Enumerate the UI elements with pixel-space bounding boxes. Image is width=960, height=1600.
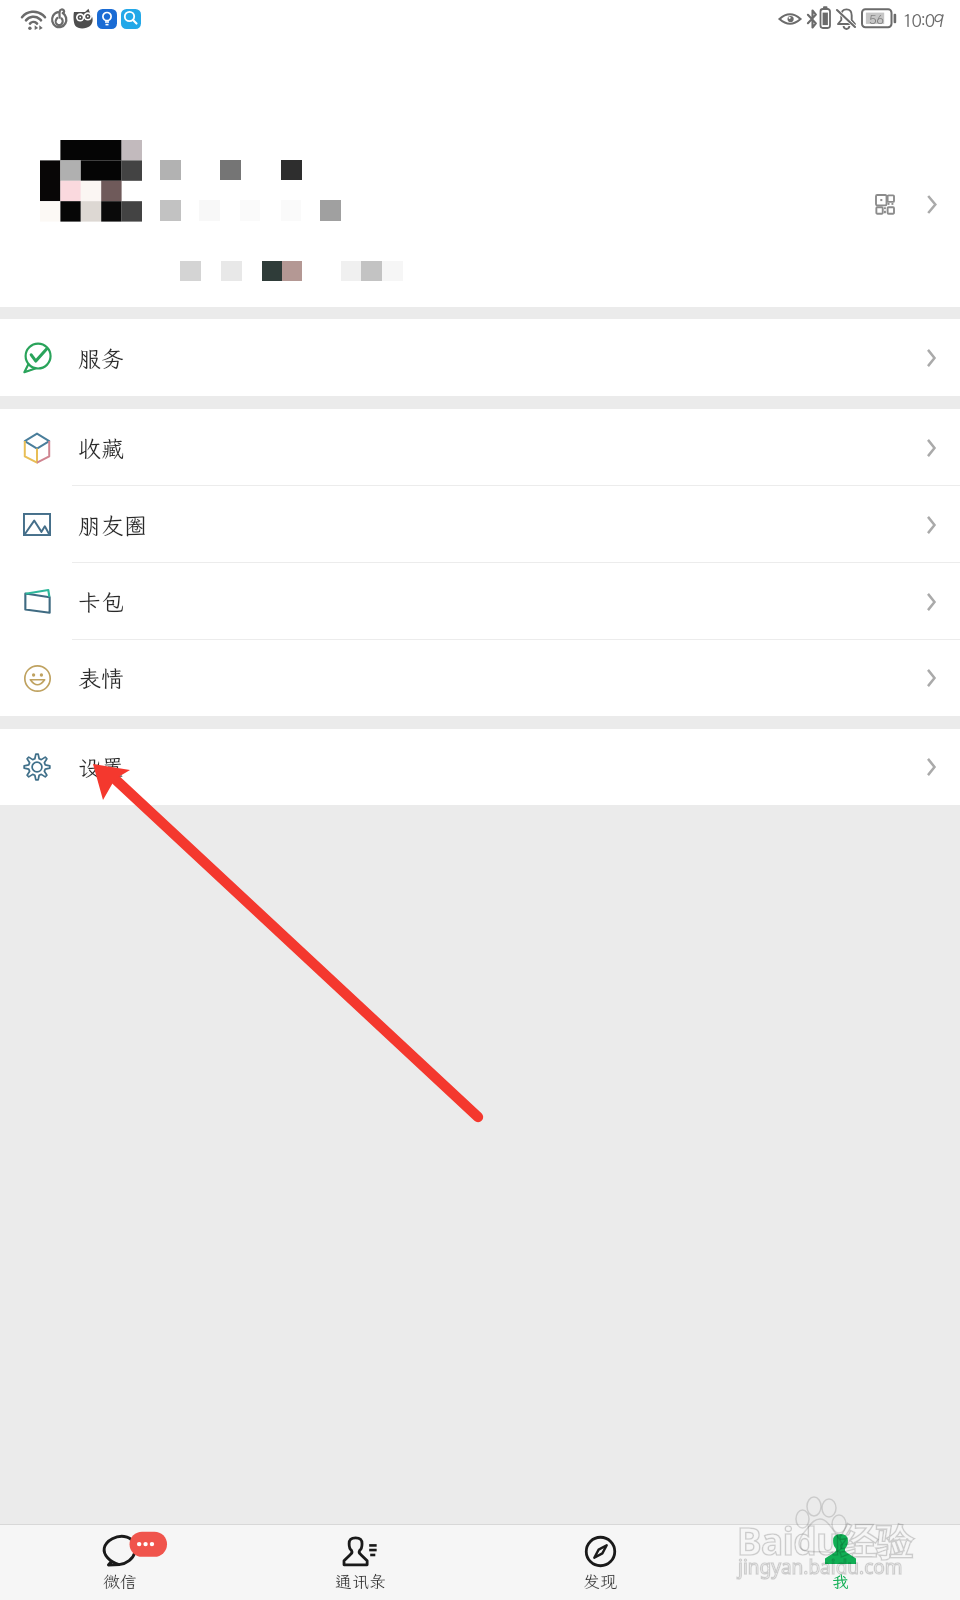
staticText: 微信	[103, 1570, 137, 1592]
staticText: 通讯录	[335, 1570, 386, 1592]
staticText: jingyan.baidu.com	[738, 1554, 903, 1580]
staticText: 56	[869, 11, 884, 28]
button[interactable]: 表情	[0, 640, 960, 716]
staticText: 朋友圈	[78, 510, 147, 540]
button[interactable]: 服务	[0, 319, 960, 396]
staticText: 我	[832, 1570, 849, 1592]
button[interactable]: 通讯录	[240, 1525, 480, 1600]
staticText: 设置	[78, 752, 124, 782]
button[interactable]: 设置	[0, 729, 960, 805]
button[interactable]: 发现	[480, 1525, 720, 1600]
button[interactable]: My QR code	[0, 46, 960, 307]
button[interactable]: 朋友圈	[0, 486, 960, 563]
staticText: 服务	[78, 343, 124, 373]
staticText: 卡包	[78, 587, 124, 617]
button[interactable]: 我	[720, 1525, 960, 1600]
button[interactable]: Open personal info	[912, 185, 950, 223]
staticText: 收藏	[78, 433, 124, 463]
staticText: Baidu经验	[737, 1515, 913, 1566]
button[interactable]: My QR code	[866, 185, 904, 223]
button[interactable]: 收藏	[0, 409, 960, 486]
staticText: 发现	[583, 1570, 617, 1592]
button[interactable]: 微信	[0, 1525, 240, 1600]
staticText: 表情	[78, 663, 124, 693]
staticText: 10:09	[902, 7, 943, 32]
button[interactable]: 卡包	[0, 563, 960, 640]
